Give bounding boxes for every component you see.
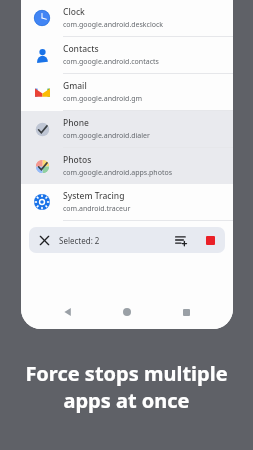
button[interactable]: Gmail: [21, 74, 233, 111]
staticText: com.google.android.gm: [63, 94, 143, 104]
button[interactable]: Contacts: [21, 37, 233, 74]
staticText: Gmail: [63, 80, 87, 92]
button[interactable]: Back: [55, 299, 81, 325]
staticText: Photos: [63, 154, 92, 166]
button[interactable]: Close selection: [29, 227, 59, 253]
staticText: com.google.android.contacts: [63, 57, 159, 67]
button[interactable]: Add to list: [167, 227, 195, 253]
staticText: com.google.android.dialer: [63, 131, 150, 141]
staticText: Phone: [63, 117, 89, 129]
button[interactable]: Recent apps: [173, 299, 199, 325]
button[interactable]: Phone: [21, 111, 233, 148]
staticText: com.google.android.deskclock: [63, 20, 164, 30]
staticText: Contacts: [63, 43, 99, 55]
staticText: System Tracing: [63, 190, 125, 202]
staticText: Selected: 2: [59, 235, 100, 246]
staticText: Force stops multiple apps at once: [25, 360, 228, 414]
button[interactable]: Clock: [21, 0, 233, 37]
button[interactable]: Force stop: [195, 227, 225, 253]
staticText: com.android.traceur: [63, 204, 131, 214]
staticText: Clock: [63, 6, 85, 18]
staticText: com.google.android.apps.photos: [63, 168, 173, 178]
button[interactable]: Home: [114, 299, 140, 325]
button[interactable]: System Tracing: [21, 184, 233, 221]
button[interactable]: Photos: [21, 148, 233, 184]
